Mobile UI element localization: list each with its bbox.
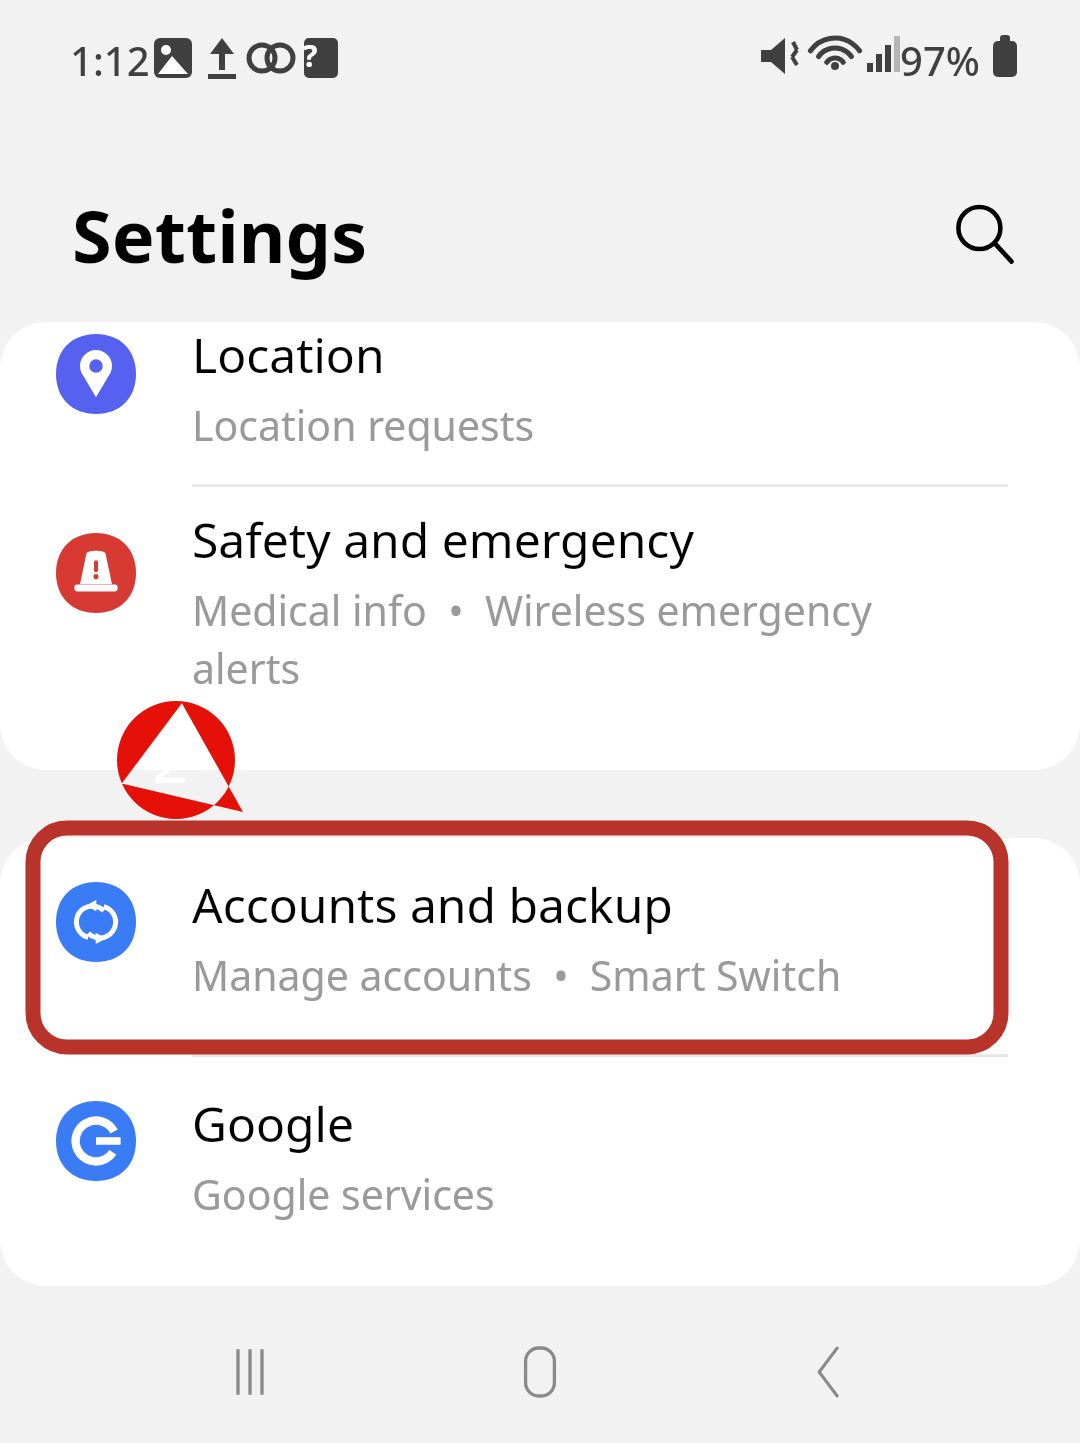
staticText: ? xyxy=(303,35,318,76)
button[interactable]: Search xyxy=(930,180,1040,290)
staticText: 1:12 xyxy=(70,33,150,87)
staticText: Settings xyxy=(72,186,368,284)
button[interactable]: Recents xyxy=(160,1322,340,1422)
staticText: Accounts and backup xyxy=(192,872,673,937)
staticText: Google xyxy=(192,1091,355,1156)
staticText: 97% xyxy=(900,33,980,87)
staticText: Location requests xyxy=(192,397,535,453)
staticText: Medical info • Wireless emergency alerts xyxy=(192,582,932,696)
button[interactable]: Google xyxy=(0,1057,1080,1277)
button[interactable]: Safety and emergency xyxy=(0,487,1080,767)
staticText: Location xyxy=(192,322,385,387)
button[interactable]: Back xyxy=(740,1322,920,1422)
staticText: Manage accounts • Smart Switch xyxy=(192,947,842,1003)
staticText: Google services xyxy=(192,1166,495,1222)
button[interactable]: Location xyxy=(0,322,1080,484)
staticText: 2 xyxy=(152,717,188,801)
button[interactable]: Accounts and backup xyxy=(0,838,1080,1054)
staticText: Safety and emergency xyxy=(192,507,694,572)
button[interactable]: Home xyxy=(450,1322,630,1422)
